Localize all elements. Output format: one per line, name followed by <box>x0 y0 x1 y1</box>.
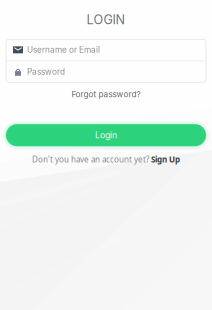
button[interactable]: Login <box>6 124 206 146</box>
button[interactable]: Forgot password? <box>67 82 144 102</box>
staticText: Password <box>27 67 65 77</box>
staticText: Username or Email <box>27 45 100 55</box>
staticText: Don't you have an account yet? <box>32 154 151 165</box>
button[interactable]: Don't you have an account yet? <box>32 146 180 169</box>
staticText: Login <box>95 130 117 140</box>
staticText: Sign Up <box>151 154 180 165</box>
staticText: Forgot password? <box>71 89 140 99</box>
staticText: LOGIN <box>86 12 125 27</box>
